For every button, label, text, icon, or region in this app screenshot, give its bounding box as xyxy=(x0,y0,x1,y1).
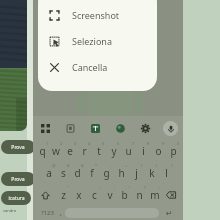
staticText: a xyxy=(46,166,52,180)
staticText: 7 xyxy=(132,141,135,146)
staticText: v xyxy=(107,188,113,202)
staticText: 0 xyxy=(177,141,180,146)
staticText: m xyxy=(150,188,160,202)
staticText: ; xyxy=(114,185,116,190)
staticText: Prova xyxy=(11,144,25,151)
staticText: @ xyxy=(52,163,56,168)
staticText: z xyxy=(61,188,66,202)
button[interactable]: Screenshot xyxy=(38,2,157,28)
button[interactable]: Apps xyxy=(38,121,53,136)
staticText: w xyxy=(52,144,60,158)
staticText: ' xyxy=(84,185,85,190)
button[interactable]: j xyxy=(129,162,144,184)
staticText: q xyxy=(39,144,46,158)
staticText: 9 xyxy=(162,141,165,146)
staticText: 8 xyxy=(147,141,150,146)
button[interactable]: k xyxy=(144,162,159,184)
button[interactable]: Clipboard xyxy=(63,121,78,136)
button[interactable]: a xyxy=(42,162,56,184)
button[interactable]: v xyxy=(102,184,117,206)
button[interactable]: l xyxy=(159,162,174,184)
staticText: ↵ xyxy=(166,209,173,218)
button[interactable]: t xyxy=(91,140,106,162)
button[interactable]: b xyxy=(117,184,132,206)
button[interactable]: g xyxy=(99,162,114,184)
button[interactable]: Voice input xyxy=(163,121,178,136)
staticText: g xyxy=(103,166,110,180)
staticText: / xyxy=(171,163,173,168)
button[interactable]: , xyxy=(57,208,65,218)
staticText: s xyxy=(61,166,66,180)
staticText: Prova xyxy=(11,176,25,183)
button[interactable]: ?123 xyxy=(37,208,57,218)
staticText: 2 xyxy=(60,141,63,146)
staticText: ) xyxy=(156,163,158,168)
button[interactable]: Cancella xyxy=(38,54,157,80)
staticText: i xyxy=(142,144,145,158)
staticText: + xyxy=(125,163,128,168)
staticText: l xyxy=(165,166,168,180)
staticText: sandro xyxy=(3,208,17,213)
staticText: d xyxy=(74,166,81,180)
staticText: ! xyxy=(129,185,131,190)
staticText: t xyxy=(97,144,101,158)
button[interactable]: Backspace xyxy=(162,184,180,206)
button[interactable]: e xyxy=(63,140,77,162)
staticText: 3 xyxy=(74,141,77,146)
staticText: : xyxy=(99,185,101,190)
staticText: b xyxy=(121,188,128,202)
staticText: ( xyxy=(141,163,143,168)
staticText: , xyxy=(60,208,62,218)
staticText: e xyxy=(67,144,73,158)
staticText: r xyxy=(82,144,87,158)
button[interactable]: u xyxy=(121,140,136,162)
button[interactable]: w xyxy=(49,140,63,162)
button[interactable]: Settings xyxy=(138,121,153,136)
staticText: x xyxy=(76,188,82,202)
staticText: Screenshot xyxy=(72,9,120,21)
button[interactable]: ↵ xyxy=(159,208,179,218)
staticText: f xyxy=(90,166,94,180)
staticText: c xyxy=(92,188,97,202)
button[interactable]: h xyxy=(114,162,129,184)
button[interactable]: Shift xyxy=(36,184,55,206)
button[interactable]: icatura xyxy=(1,191,31,205)
button[interactable]: x xyxy=(71,184,87,206)
staticText: 6 xyxy=(117,141,120,146)
button[interactable]: c xyxy=(87,184,102,206)
staticText: p xyxy=(170,144,177,158)
button[interactable]: f xyxy=(84,162,99,184)
button[interactable]: Prova xyxy=(1,140,35,154)
button[interactable]: y xyxy=(106,140,121,162)
staticText: y xyxy=(111,144,117,158)
button[interactable]: n xyxy=(132,184,147,206)
button[interactable]: Seleziona xyxy=(38,28,157,54)
staticText: o xyxy=(155,144,162,158)
button[interactable]: Prova xyxy=(1,172,35,186)
button[interactable]: d xyxy=(70,162,84,184)
staticText: * xyxy=(95,163,98,168)
button[interactable]: z xyxy=(55,184,71,206)
button[interactable]: p xyxy=(166,140,181,162)
button[interactable]: q xyxy=(35,140,49,162)
button[interactable]: Translate xyxy=(88,121,103,136)
staticText: u xyxy=(125,144,132,158)
staticText: # xyxy=(67,163,70,168)
staticText: 4 xyxy=(88,141,91,146)
staticText: n xyxy=(136,188,143,202)
staticText: Cancella xyxy=(72,61,108,73)
staticText: 5 xyxy=(102,141,105,146)
button[interactable]: Theme xyxy=(113,121,128,136)
button[interactable]: r xyxy=(77,140,91,162)
button[interactable]: s xyxy=(56,162,70,184)
staticText: ? xyxy=(144,185,146,190)
button[interactable]: m xyxy=(147,184,162,206)
button[interactable]: o xyxy=(151,140,166,162)
staticText: h xyxy=(118,166,125,180)
button[interactable]: i xyxy=(136,140,151,162)
staticText: Seleziona xyxy=(72,35,112,47)
staticText: 1 xyxy=(46,141,49,146)
staticText: j xyxy=(135,166,138,180)
